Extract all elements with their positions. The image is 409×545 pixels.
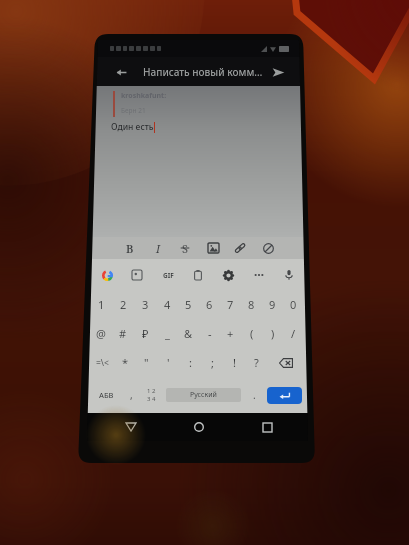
staticText: 4 — [164, 297, 171, 312]
button[interactable]: S — [176, 239, 194, 257]
staticText: ; — [211, 355, 214, 370]
staticText: : — [189, 355, 192, 370]
staticText: ! — [233, 355, 236, 370]
button[interactable]: ) — [262, 319, 283, 348]
staticText: , — [130, 388, 133, 402]
button[interactable]: 2 — [112, 290, 134, 319]
button[interactable]: Clipboard — [189, 266, 207, 284]
button[interactable]: Русский — [166, 388, 241, 402]
button[interactable]: 1 — [90, 290, 112, 319]
staticText: 3 4 — [147, 395, 156, 403]
button[interactable]: 8 — [241, 290, 262, 319]
staticText: _ — [165, 326, 170, 341]
staticText: ' — [167, 355, 170, 370]
staticText: Написать новый комм… — [143, 65, 263, 79]
staticText: ? — [254, 355, 259, 370]
staticText: * — [122, 355, 129, 370]
staticText: ₽ — [142, 326, 149, 341]
button[interactable]: Clear formatting — [259, 239, 277, 257]
button[interactable]: 3 — [134, 290, 156, 319]
button[interactable]: Enter — [267, 387, 302, 404]
staticText: + — [227, 326, 234, 341]
button[interactable]: , — [122, 377, 141, 413]
staticText: ( — [250, 326, 254, 341]
button[interactable]: Insert image — [204, 239, 222, 257]
button[interactable]: 6 — [199, 290, 220, 319]
button[interactable]: + — [220, 319, 241, 348]
button[interactable]: Insert link — [231, 239, 249, 257]
staticText: Один есть — [111, 121, 154, 133]
staticText: 2 — [120, 297, 127, 312]
staticText: ) — [271, 326, 275, 341]
button[interactable]: 9 — [262, 290, 283, 319]
button[interactable]: & — [178, 319, 199, 348]
staticText: 6 — [206, 297, 213, 312]
staticText: I — [156, 241, 161, 256]
button[interactable]: _ — [156, 319, 178, 348]
staticText: & — [184, 326, 193, 341]
button[interactable]: : — [179, 348, 201, 377]
button[interactable]: B — [121, 239, 139, 257]
button[interactable]: / — [283, 319, 304, 348]
button[interactable]: * — [115, 348, 136, 377]
button[interactable]: 4 — [156, 290, 178, 319]
button[interactable]: 5 — [178, 290, 199, 319]
staticText: GIF — [163, 271, 174, 280]
button[interactable]: # — [112, 319, 134, 348]
button[interactable]: =\< — [89, 348, 115, 377]
button[interactable]: - — [199, 319, 220, 348]
button[interactable]: Stickers — [128, 266, 146, 284]
button[interactable]: More options — [250, 266, 268, 284]
button[interactable]: ! — [223, 348, 245, 377]
button[interactable]: GIF — [159, 266, 177, 284]
button[interactable]: Back — [118, 414, 144, 440]
staticText: - — [208, 326, 212, 341]
staticText: S — [182, 241, 188, 256]
staticText: Берн 21 — [121, 106, 146, 115]
button[interactable]: Settings — [219, 266, 237, 284]
staticText: B — [126, 241, 134, 256]
staticText: # — [119, 326, 127, 341]
button[interactable]: АБВ — [90, 377, 122, 413]
button[interactable]: Home — [186, 414, 212, 440]
button[interactable]: " — [136, 348, 157, 377]
staticText: 8 — [248, 297, 255, 312]
staticText: АБВ — [99, 390, 114, 400]
button[interactable]: 1 2 — [141, 377, 162, 413]
button[interactable]: Voice input — [280, 266, 298, 284]
staticText: 3 — [142, 297, 149, 312]
button[interactable]: ; — [201, 348, 223, 377]
staticText: 7 — [227, 297, 234, 312]
staticText: =\< — [96, 357, 109, 369]
staticText: @ — [96, 326, 106, 341]
button[interactable]: ' — [157, 348, 179, 377]
staticText: 1 — [98, 297, 105, 312]
button[interactable]: ( — [241, 319, 262, 348]
staticText: / — [291, 326, 296, 341]
button[interactable]: Backspace — [267, 348, 305, 377]
staticText: 1 2 — [147, 387, 156, 395]
staticText: Русский — [190, 390, 217, 400]
button[interactable]: 0 — [283, 290, 304, 319]
button[interactable]: @ — [90, 319, 112, 348]
staticText: kroshkafunt: — [121, 91, 167, 101]
button[interactable]: ₽ — [134, 319, 156, 348]
staticText: . — [253, 388, 256, 402]
staticText: 5 — [185, 297, 192, 312]
button[interactable]: ? — [245, 348, 267, 377]
button[interactable]: Google search — [98, 266, 116, 284]
button[interactable]: 7 — [220, 290, 241, 319]
button[interactable]: . — [245, 377, 264, 413]
staticText: 0 — [290, 297, 297, 312]
staticText: " — [144, 355, 149, 370]
button[interactable]: Recents — [254, 414, 280, 440]
button[interactable]: Send — [266, 60, 290, 84]
button[interactable]: I — [149, 239, 167, 257]
button[interactable]: Back — [109, 60, 133, 84]
staticText: 9 — [269, 297, 276, 312]
